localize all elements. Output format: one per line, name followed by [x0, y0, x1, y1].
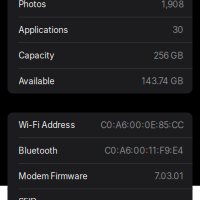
button[interactable]: Wi-Fi Address [7, 112, 192, 137]
staticText: C0:A6:00:11:F9:E4 [104, 145, 183, 156]
button[interactable]: Bluetooth [7, 138, 192, 163]
button[interactable]: Modem Firmware [7, 164, 192, 189]
staticText: 143.74 GB [141, 76, 183, 86]
button[interactable]: Available [7, 68, 192, 93]
staticText: 30 [172, 24, 183, 35]
button[interactable]: Photos [7, 0, 192, 17]
button[interactable]: Applications [7, 17, 192, 42]
staticText: Modem Firmware [18, 171, 87, 181]
staticText: Wi-Fi Address [18, 120, 75, 130]
staticText: Bluetooth [18, 145, 57, 156]
staticText: 1,908 [161, 0, 183, 9]
staticText: Available [18, 76, 54, 86]
staticText: Photos [18, 0, 46, 9]
staticText: Capacity [18, 50, 54, 61]
staticText: SEID [18, 197, 36, 200]
button[interactable]: Capacity [7, 43, 192, 68]
staticText: 256 GB [153, 50, 183, 61]
staticText: C0:A6:00:0E:85:CC [100, 120, 183, 130]
button[interactable]: SEID [7, 189, 192, 200]
staticText: 7.03.01 [154, 171, 183, 181]
staticText: Applications [18, 25, 68, 35]
